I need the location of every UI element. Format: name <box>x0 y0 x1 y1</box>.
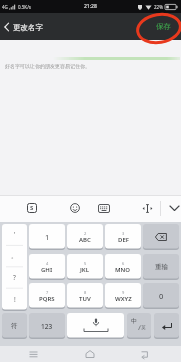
button[interactable]: S <box>27 203 37 213</box>
staticText: 123 <box>41 322 53 331</box>
staticText: ! <box>14 295 16 304</box>
button[interactable]: 2 <box>67 224 103 250</box>
staticText: WXYZ <box>115 295 132 303</box>
staticText: 4G <box>2 4 8 10</box>
button[interactable] <box>85 350 95 358</box>
staticText: GHI <box>41 266 53 274</box>
staticText: 重输 <box>155 263 168 271</box>
staticText: 6 <box>122 261 125 266</box>
staticText: 1 <box>45 232 50 242</box>
button[interactable]: ' <box>2 224 27 311</box>
button[interactable]: 1 <box>29 224 65 250</box>
staticText: 好名字可以让你的朋友更容易记住你。 <box>5 63 90 69</box>
staticText: MNO <box>115 266 131 274</box>
button[interactable]: 6 <box>105 254 141 280</box>
staticText: ' <box>14 230 16 239</box>
staticText: 9 <box>122 290 125 295</box>
staticText: 22% <box>154 4 163 10</box>
staticText: 符 <box>11 322 18 330</box>
button[interactable]: 更改名字 <box>13 23 43 32</box>
button[interactable]: 8 <box>67 283 103 309</box>
staticText: 0.5K/s <box>18 4 31 10</box>
button[interactable] <box>141 351 150 358</box>
staticText: TUV <box>79 295 91 303</box>
button[interactable] <box>98 204 110 213</box>
staticText: 3 <box>122 231 125 236</box>
button[interactable] <box>169 205 180 212</box>
button[interactable]: 中 <box>127 313 151 339</box>
button[interactable]: 5 <box>67 254 103 280</box>
staticText: ? <box>13 273 16 282</box>
staticText: 21:28 <box>84 3 97 10</box>
staticText: JKL <box>80 266 90 274</box>
staticText: 。 <box>11 252 18 260</box>
button[interactable]: 0 <box>143 283 179 309</box>
button[interactable] <box>143 224 179 250</box>
button[interactable]: 9 <box>105 283 141 309</box>
button[interactable]: 3 <box>105 224 141 250</box>
staticText: 8 <box>84 290 87 295</box>
button[interactable] <box>142 204 153 213</box>
staticText: S <box>30 204 34 212</box>
button[interactable] <box>70 203 80 213</box>
staticText: 2 <box>84 231 87 236</box>
staticText: 0 <box>159 291 164 301</box>
button[interactable]: 7 <box>29 283 65 309</box>
staticText: 5 <box>84 261 87 266</box>
staticText: 4 <box>46 261 49 266</box>
button[interactable]: 符 <box>2 313 27 339</box>
button[interactable]: 重输 <box>143 254 179 280</box>
button[interactable] <box>67 313 124 339</box>
button[interactable]: 4 <box>29 254 65 280</box>
button[interactable]: 保存 <box>156 22 171 31</box>
staticText: DEF <box>118 236 129 244</box>
staticText: 英 <box>141 325 146 331</box>
staticText: 7 <box>46 290 49 295</box>
button[interactable] <box>154 313 179 339</box>
staticText: ABC <box>79 236 91 244</box>
staticText: 中 <box>131 317 137 325</box>
button[interactable]: 123 <box>29 313 65 339</box>
staticText: PQRS <box>39 295 55 303</box>
button[interactable] <box>29 351 38 358</box>
